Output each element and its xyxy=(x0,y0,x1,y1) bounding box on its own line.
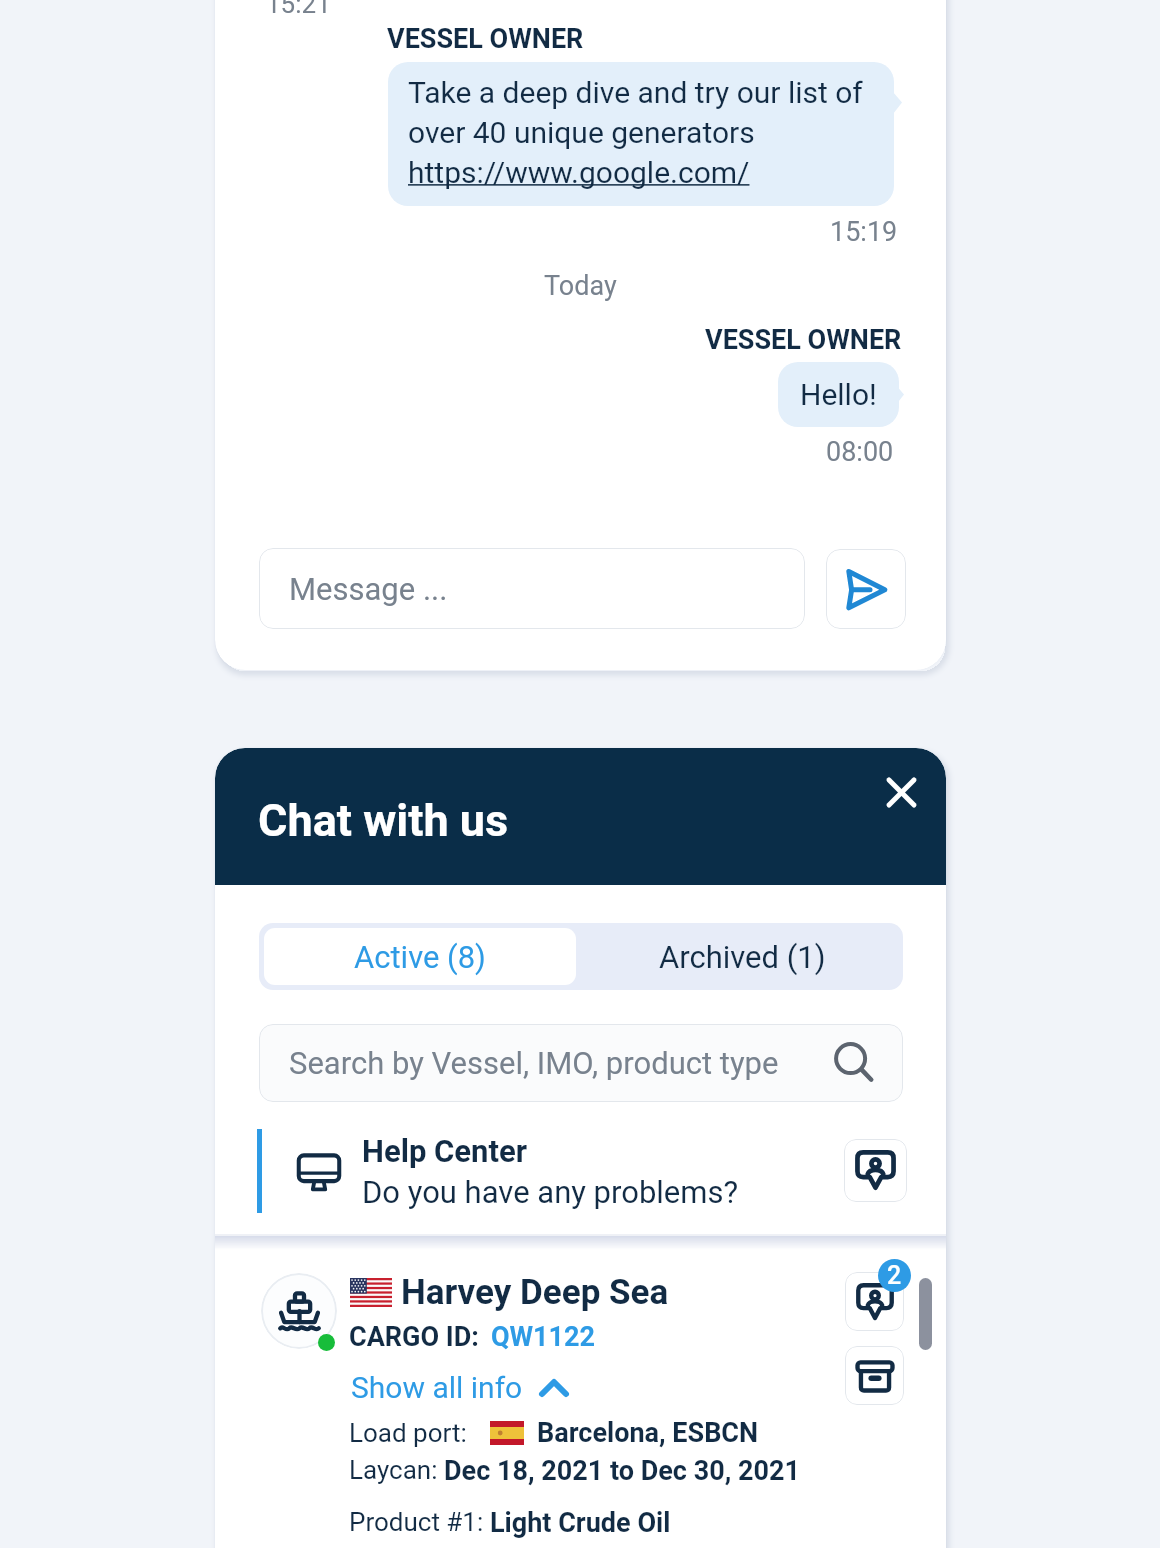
button[interactable]: Send message xyxy=(826,549,906,629)
staticText: 2 xyxy=(887,1261,902,1290)
button[interactable]: Archived (1) xyxy=(581,923,903,990)
staticText: Archived (1) xyxy=(659,939,826,975)
staticText: Laycan: xyxy=(349,1455,444,1485)
staticText: 15:19 xyxy=(830,216,898,248)
button[interactable]: Show all info xyxy=(351,1370,569,1405)
staticText: Harvey Deep Sea xyxy=(401,1272,669,1313)
staticText: QW1122 xyxy=(491,1321,595,1353)
staticText: Take a deep dive and try our list of ove… xyxy=(408,75,863,190)
staticText: Active (8) xyxy=(354,939,486,975)
staticText: Show all info xyxy=(351,1370,523,1405)
staticText: Dec 18, 2021 to Dec 30, 2021 xyxy=(444,1455,800,1487)
button[interactable]: Contact support xyxy=(844,1139,907,1202)
staticText: VESSEL OWNER xyxy=(387,23,584,55)
button[interactable]: Close chat xyxy=(875,766,927,818)
staticText: Light Crude Oil xyxy=(490,1507,671,1539)
staticText: Search by Vessel, IMO, product type xyxy=(289,1045,833,1081)
staticText: Barcelona, ESBCN xyxy=(537,1417,759,1449)
staticText: CARGO ID: xyxy=(349,1321,479,1353)
staticText: 15:21 xyxy=(266,0,331,19)
staticText: 08:00 xyxy=(826,436,894,468)
button[interactable]: Search by Vessel, IMO, product type xyxy=(259,1024,903,1102)
staticText: Hello! xyxy=(800,377,877,412)
button[interactable]: Open conversation xyxy=(845,1272,904,1331)
button[interactable]: Active (8) xyxy=(264,928,576,985)
staticText: Today xyxy=(544,270,617,302)
staticText: VESSEL OWNER xyxy=(705,324,902,356)
button[interactable] xyxy=(257,1120,817,1222)
staticText: Product #1: xyxy=(349,1507,490,1537)
staticText: Help Center xyxy=(362,1133,528,1169)
staticText: Chat with us xyxy=(258,794,509,847)
staticText: Message ... xyxy=(289,571,448,607)
staticText: Do you have any problems? xyxy=(362,1174,739,1210)
staticText: Load port: xyxy=(349,1418,467,1448)
button[interactable]: Archive conversation xyxy=(845,1346,904,1405)
button[interactable]: Message ... xyxy=(259,548,805,629)
button[interactable] xyxy=(245,1253,825,1543)
